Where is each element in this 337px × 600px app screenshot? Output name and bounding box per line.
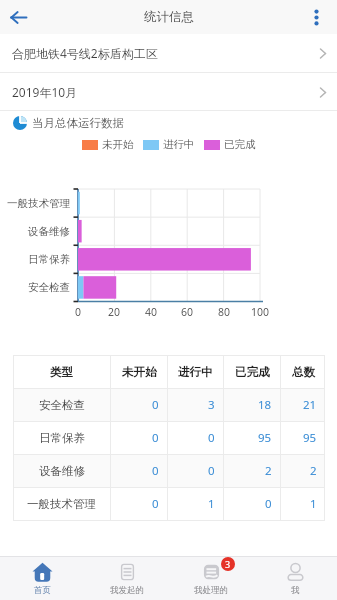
staticText: 类型 [50,365,73,379]
staticText: 95 [258,430,272,446]
staticText: 2019年10月 [12,84,78,100]
button[interactable]: 首页 [0,557,85,600]
staticText: 未开始 [122,365,157,379]
staticText: 60 [181,305,194,319]
staticText: 已完成 [235,365,270,379]
staticText: 2 [265,463,272,479]
staticText: 1 [208,496,215,512]
staticText: 进行中 [178,365,213,379]
staticText: 2 [310,463,317,479]
staticText: 0 [152,463,159,479]
button[interactable]: 3 [169,557,253,600]
staticText: 当月总体运行数据 [32,116,124,130]
staticText: 3 [208,397,215,413]
staticText: 日常保养 [28,253,70,266]
staticText: 0 [208,463,215,479]
staticText: 40 [145,305,158,319]
staticText: 一般技术管理 [7,197,70,210]
staticText: 日常保养 [39,431,85,445]
staticText: 0 [208,430,215,446]
staticText: 首页 [34,585,51,596]
staticText: 0 [152,496,159,512]
staticText: 我 [291,585,300,596]
staticText: 80 [218,305,231,319]
button[interactable]: 我发起的 [85,557,169,600]
button[interactable]: 2019年10月 [0,73,337,111]
staticText: 设备维修 [39,464,85,478]
staticText: 我发起的 [110,585,144,596]
button[interactable]: 我 [253,557,337,600]
staticText: 0 [152,397,159,413]
staticText: 21 [303,397,317,413]
staticText: 一般技术管理 [27,497,96,511]
staticText: 总数 [292,365,315,379]
staticText: 安全检查 [39,398,85,412]
staticText: 已完成 [224,138,256,151]
staticText: 进行中 [163,138,195,151]
staticText: 1 [310,496,317,512]
staticText: 0 [265,496,272,512]
staticText: 合肥地铁4号线2标盾构工区 [12,45,158,61]
staticText: 0 [152,430,159,446]
button[interactable]: More options [295,0,337,34]
staticText: 安全检查 [28,281,70,294]
staticText: 统计信息 [144,9,194,25]
staticText: 20 [108,305,121,319]
staticText: 3 [225,558,231,570]
button[interactable]: Back [0,0,36,34]
button[interactable]: 合肥地铁4号线2标盾构工区 [0,34,337,72]
staticText: 18 [258,397,272,413]
staticText: 100 [251,305,270,319]
staticText: 设备维修 [28,225,70,238]
staticText: 我处理的 [194,585,228,596]
staticText: 95 [303,430,317,446]
staticText: 未开始 [102,138,134,151]
staticText: 0 [75,305,82,319]
